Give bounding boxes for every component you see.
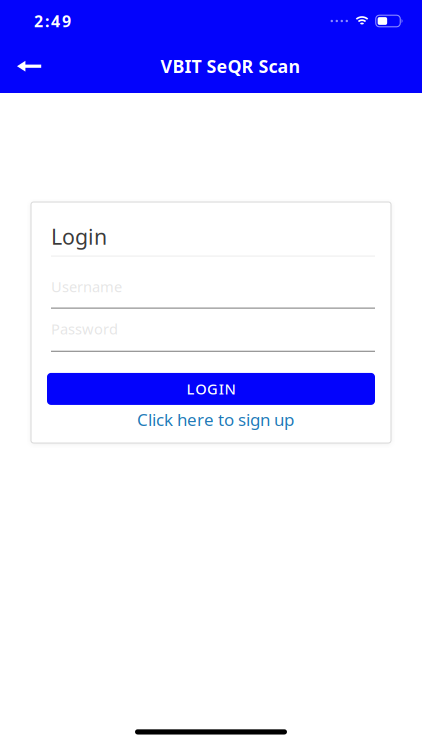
staticText: Username: [51, 277, 122, 297]
staticText: Password: [51, 319, 118, 339]
staticText: Login: [51, 222, 107, 251]
staticText: VBIT SeQR Scan: [160, 54, 300, 78]
button[interactable]: LOGIN: [47, 373, 375, 405]
button[interactable]: Click here to sign up: [47, 405, 375, 431]
staticText: Click here to sign up: [137, 408, 294, 431]
button[interactable]: Username: [47, 277, 375, 309]
staticText: LOGIN: [186, 379, 236, 399]
button[interactable]: Back: [0, 54, 52, 75]
staticText: 2:49: [34, 10, 71, 32]
button[interactable]: Password: [47, 319, 375, 352]
